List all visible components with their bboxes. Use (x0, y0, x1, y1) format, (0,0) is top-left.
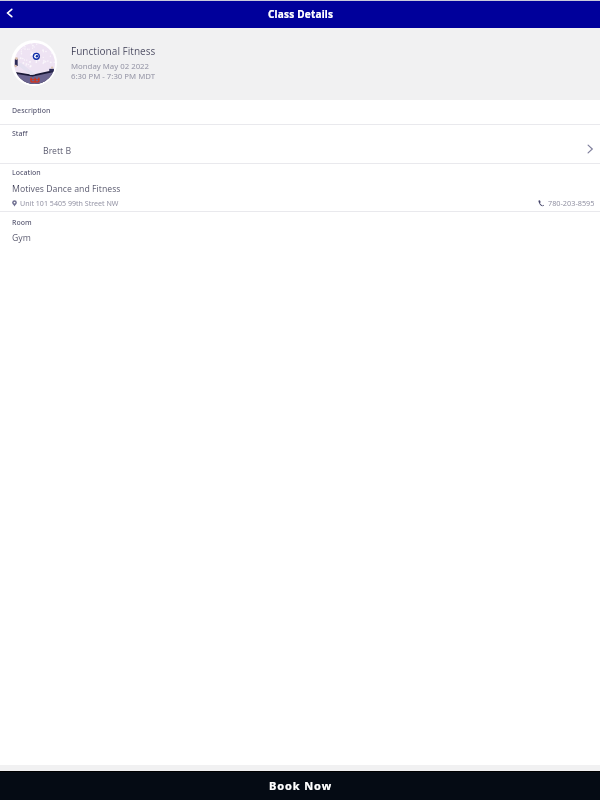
staticText: Brett B (43, 145, 72, 157)
button[interactable]: Book Now (0, 772, 600, 800)
button[interactable]: Open address in maps (12, 198, 119, 208)
button[interactable]: Call 780-203-8595 (538, 198, 595, 208)
button[interactable]: Back (0, 1, 24, 28)
staticText: 780-203-8595 (548, 198, 595, 208)
staticText: Gym (12, 232, 31, 244)
staticText: Book Now (269, 778, 332, 793)
staticText: Staff (12, 129, 28, 139)
staticText: Location (12, 168, 41, 178)
staticText: Monday May 02 2022 6:30 PM - 7:30 PM MDT (71, 61, 156, 81)
staticText: Unit 101 5405 99th Street NW (20, 198, 119, 208)
staticText: Room (12, 218, 32, 228)
staticText: Class Details (268, 7, 334, 21)
staticText: Functional Fitness (71, 44, 156, 58)
button[interactable]: Brett B (0, 142, 600, 163)
staticText: Motives Dance and Fitness (12, 183, 121, 195)
staticText: Description (12, 106, 51, 116)
